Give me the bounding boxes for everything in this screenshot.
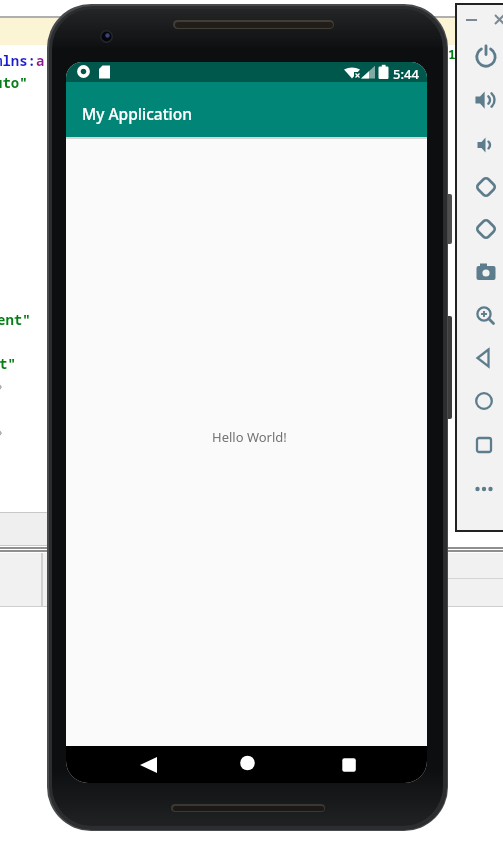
button[interactable] xyxy=(469,474,499,504)
button[interactable] xyxy=(471,85,501,115)
staticText: t" xyxy=(0,354,16,373)
button[interactable] xyxy=(469,430,499,460)
button[interactable] xyxy=(232,748,262,778)
button[interactable] xyxy=(334,749,364,779)
staticText: Hello World! xyxy=(212,428,287,446)
button[interactable] xyxy=(469,386,499,416)
button[interactable] xyxy=(471,172,501,202)
staticText: My Application xyxy=(82,103,192,124)
button[interactable] xyxy=(134,749,164,779)
button[interactable] xyxy=(471,130,501,160)
button[interactable] xyxy=(471,301,501,331)
button[interactable] xyxy=(471,214,501,244)
staticText: 1' xyxy=(448,45,464,63)
button[interactable] xyxy=(462,10,482,30)
button[interactable] xyxy=(491,10,503,30)
staticText: ent" xyxy=(0,310,31,329)
staticText: uto" xyxy=(0,73,28,92)
button[interactable] xyxy=(471,257,501,287)
button[interactable] xyxy=(471,41,501,71)
staticText: › xyxy=(0,379,3,393)
button[interactable] xyxy=(469,343,499,373)
staticText: 5:44 xyxy=(393,65,419,83)
staticText: › xyxy=(0,425,3,439)
staticText: mlns:a xyxy=(0,51,45,70)
